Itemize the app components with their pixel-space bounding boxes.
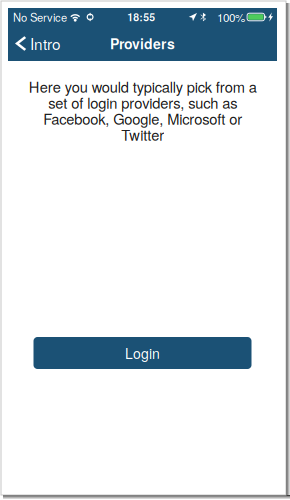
button[interactable]: Login [33, 337, 251, 369]
staticText: Login [125, 343, 160, 363]
staticText: 18:55 [127, 9, 155, 25]
staticText: Intro [30, 32, 61, 54]
staticText: Here you would typically pick from a set… [28, 76, 256, 145]
button[interactable]: Intro [8, 26, 71, 61]
staticText: No Service [13, 9, 67, 25]
staticText: 100% [217, 9, 245, 25]
staticText: Providers [110, 33, 175, 53]
